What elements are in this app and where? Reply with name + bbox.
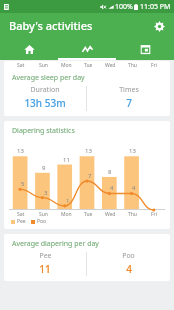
button[interactable]: Diapering statistics [4,121,170,229]
staticText: Diapering statistics [12,126,75,136]
staticText: 100% [115,2,133,12]
staticText: Duration [30,85,60,95]
staticText: 4 [126,262,132,276]
staticText: Mon [61,62,72,69]
staticText: 13 [85,147,92,155]
staticText: Wed [105,211,116,218]
staticText: Tue [84,62,93,69]
staticText: Poo [122,251,135,261]
button[interactable]: Sat [4,61,170,116]
staticText: Sun [39,211,48,218]
button[interactable]: Average diapering per day [4,234,170,281]
staticText: 4 [110,184,114,192]
staticText: 13 [129,147,136,155]
staticText: Average diapering per day [12,239,99,249]
staticText: Pee [39,251,52,261]
staticText: Sun [39,62,48,69]
staticText: 3 [44,189,48,197]
button[interactable]: Statistics [58,38,116,60]
staticText: Pee [17,218,26,225]
staticText: 11 [39,262,51,276]
button[interactable]: Home [0,38,58,60]
staticText: 11:05 PM [140,2,171,12]
staticText: Sat [17,211,25,218]
staticText: Average sleep per day [12,73,85,83]
staticText: Times [119,85,139,95]
staticText: 1 [66,197,70,205]
staticText: 4 [132,184,136,192]
staticText: 13 [17,147,24,155]
staticText: Fri [151,62,157,69]
staticText: 7 [126,96,132,110]
staticText: Thu [128,62,137,69]
staticText: Baby's activities [9,18,93,33]
staticText: Thu [128,211,137,218]
staticText: 11 [63,156,70,164]
staticText: Tue [84,211,93,218]
staticText: Poo [37,218,47,225]
button[interactable]: Calendar [116,38,174,60]
staticText: Mon [61,211,72,218]
staticText: 7 [88,172,92,180]
staticText: Sat [17,62,25,69]
button[interactable]: Settings [150,17,168,35]
staticText: 13h 53m [24,96,66,110]
staticText: 8 [108,168,112,176]
staticText: Wed [105,62,116,69]
staticText: 9 [42,164,46,172]
staticText: 5 [21,180,25,188]
staticText: Fri [151,211,157,218]
